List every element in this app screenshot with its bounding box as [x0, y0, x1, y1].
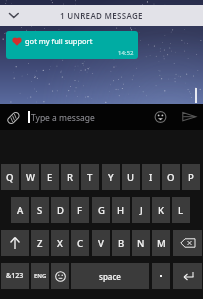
button[interactable]: S	[31, 197, 49, 223]
button[interactable]	[152, 263, 170, 289]
button[interactable]: &123	[1, 263, 29, 289]
staticText: A	[17, 204, 24, 217]
button[interactable]: G	[92, 197, 110, 223]
staticText: &123	[6, 271, 24, 281]
staticText: Type a message	[31, 112, 95, 124]
button[interactable]: P	[182, 164, 200, 190]
button[interactable]: I	[142, 164, 160, 190]
staticText: E	[47, 171, 53, 184]
button[interactable]: 1 UNREAD MESSAGE	[0, 5, 203, 26]
button[interactable]: W	[21, 164, 39, 190]
button[interactable]: A	[11, 197, 29, 223]
button[interactable]: E	[41, 164, 59, 190]
staticText: S	[37, 204, 43, 217]
staticText: 14:52	[118, 49, 134, 57]
staticText: got my full support	[25, 36, 93, 46]
button[interactable]	[173, 230, 202, 256]
staticText: X	[57, 237, 63, 250]
button[interactable]: Q	[1, 164, 19, 190]
staticText: B	[118, 237, 125, 250]
staticText: O	[167, 171, 175, 184]
staticText: I	[149, 171, 153, 184]
button[interactable]: ENG	[31, 263, 49, 289]
staticText: Q	[6, 171, 14, 184]
staticText: 1 UNREAD MESSAGE	[60, 10, 143, 21]
button[interactable]: space	[71, 263, 149, 289]
staticText: J	[140, 204, 143, 217]
button[interactable]	[1, 230, 29, 256]
button[interactable]	[173, 263, 202, 289]
staticText: P	[188, 171, 194, 184]
button[interactable]	[182, 112, 197, 122]
staticText: M	[157, 237, 166, 250]
staticText: T	[87, 171, 93, 184]
button[interactable]: Z	[31, 230, 49, 256]
button[interactable]: J	[132, 197, 150, 223]
staticText: V	[98, 237, 104, 250]
staticText: D	[57, 204, 64, 217]
button[interactable]: M	[152, 230, 170, 256]
staticText: U	[127, 171, 135, 184]
button[interactable]	[51, 263, 69, 289]
button[interactable]: Y	[102, 164, 120, 190]
button[interactable]: T	[81, 164, 99, 190]
staticText: F	[77, 204, 83, 217]
button[interactable]: N	[132, 230, 150, 256]
button[interactable]: L	[172, 197, 190, 223]
staticText: R	[67, 171, 74, 184]
staticText: G	[98, 204, 105, 217]
button[interactable]	[154, 110, 167, 123]
button[interactable]: C	[71, 230, 89, 256]
staticText: L	[178, 204, 184, 217]
button[interactable]: got my full support	[6, 31, 138, 59]
button[interactable]: U	[122, 164, 140, 190]
button[interactable]: X	[51, 230, 69, 256]
staticText: Z	[37, 237, 43, 250]
staticText: H	[117, 204, 125, 217]
staticText: N	[137, 237, 145, 250]
button[interactable]: H	[112, 197, 130, 223]
staticText: Y	[108, 171, 114, 184]
staticText: ENG	[34, 272, 47, 280]
staticText: K	[158, 204, 165, 217]
button[interactable]: O	[162, 164, 180, 190]
button[interactable]: R	[61, 164, 79, 190]
button[interactable]	[7, 111, 20, 125]
staticText: C	[77, 237, 84, 250]
button[interactable]: D	[51, 197, 69, 223]
button[interactable]: K	[152, 197, 170, 223]
staticText: space	[99, 271, 121, 282]
button[interactable]: B	[112, 230, 130, 256]
button[interactable]: F	[71, 197, 89, 223]
staticText: W	[26, 171, 35, 184]
button[interactable]: V	[92, 230, 110, 256]
